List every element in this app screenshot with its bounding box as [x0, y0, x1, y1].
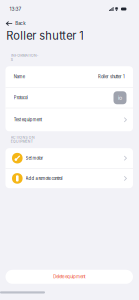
button[interactable]: Set motor — [5, 148, 133, 168]
staticText: INFORMATIONS — [11, 53, 38, 62]
button[interactable]: Add a remote control — [5, 169, 133, 188]
staticText: io — [118, 95, 122, 101]
staticText: Back — [15, 21, 25, 26]
button[interactable]: Test equipment — [5, 108, 133, 131]
staticText: Protocol — [14, 95, 28, 100]
staticText: ACTIONS ON EQUIPMENT — [11, 135, 35, 144]
staticText: Add a remote control — [26, 176, 63, 181]
staticText: Test equipment — [14, 117, 42, 122]
button[interactable]: Delete equipment — [0, 270, 139, 284]
staticText: Set motor — [26, 156, 44, 161]
staticText: Roller shutter 1 — [6, 29, 84, 42]
staticText: 13:37 — [10, 6, 22, 12]
button[interactable]: Back — [0, 18, 30, 29]
staticText: Roller shutter 1 — [98, 74, 125, 79]
staticText: Delete equipment — [53, 274, 85, 279]
staticText: Name — [14, 74, 25, 79]
